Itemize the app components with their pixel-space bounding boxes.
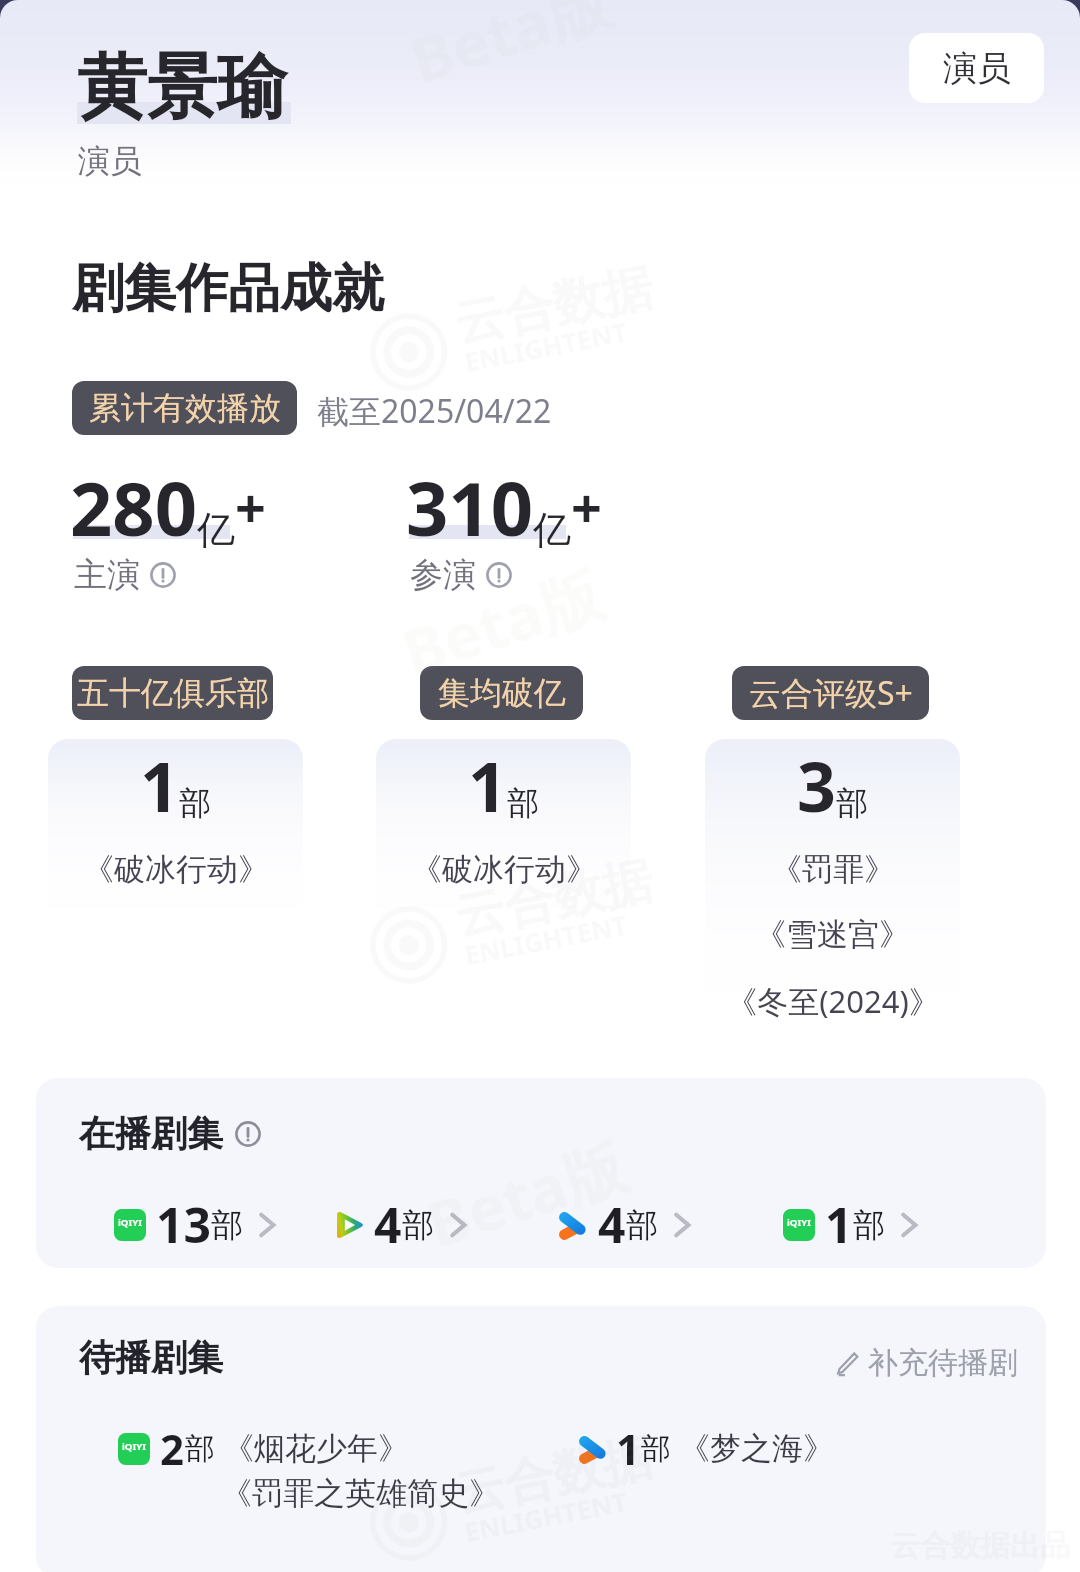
staticText: 部 [836, 783, 868, 823]
staticText: 云合评级S+ [749, 671, 913, 715]
staticText: 黄景瑜 [77, 44, 287, 132]
staticText: 部 [641, 1430, 671, 1468]
staticText: + [571, 470, 602, 544]
staticText: 云合数据 [449, 849, 658, 949]
staticText: iQIYI [118, 1216, 142, 1229]
staticText: 13 [156, 1192, 211, 1257]
staticText: Beta版 [392, 550, 613, 695]
staticText: 亿 [533, 506, 571, 554]
staticText: 演员 [78, 141, 142, 181]
staticText: 4 [374, 1192, 402, 1257]
button[interactable]: 1 [48, 739, 303, 939]
staticText: 《烟花少年》 [223, 1429, 409, 1468]
staticText: 《雪迷宫》 [755, 915, 910, 954]
staticText: 云合数据出品 [890, 1527, 1070, 1565]
staticText: 部 [402, 1205, 434, 1245]
staticText: 亿 [197, 506, 235, 554]
staticText: 演员 [943, 47, 1011, 90]
staticText: iQIYI [787, 1216, 811, 1229]
staticText: + [235, 470, 266, 544]
button[interactable]: 关于在播剧集 [235, 1121, 261, 1147]
staticText: 云合数据 [449, 1426, 658, 1526]
staticText: 待播剧集 [79, 1335, 223, 1380]
button[interactable]: 补充待播剧 [834, 1344, 1018, 1382]
staticText: 在播剧集 [79, 1111, 223, 1156]
button[interactable]: 4 [332, 1192, 474, 1257]
staticText: 《冬至(2024)》 [726, 980, 940, 1022]
staticText: 剧集作品成就 [72, 256, 384, 322]
staticText: 集均破亿 [438, 673, 566, 713]
button[interactable]: 4 [556, 1192, 698, 1257]
staticText: 《罚罪》 [771, 850, 895, 889]
button[interactable]: 关于参演 有效播放量 [486, 562, 512, 588]
staticText: 4 [598, 1192, 626, 1257]
staticText: 部 [179, 783, 211, 823]
staticText: 五十亿俱乐部 [77, 673, 269, 713]
staticText: 《破冰行动》 [411, 850, 597, 889]
staticText: 部 [507, 783, 539, 823]
button[interactable]: 关于主演 有效播放量 [150, 562, 176, 588]
staticText: 累计有效播放 [89, 388, 281, 428]
button[interactable]: 演员 [909, 33, 1044, 103]
staticText: 《罚罪之英雄简史》 [221, 1474, 500, 1513]
button[interactable]: iQIYI [118, 1420, 409, 1477]
staticText: 2 [160, 1420, 185, 1477]
button[interactable]: 1 [576, 1420, 834, 1477]
staticText: 280 [70, 457, 197, 558]
staticText: 部 [185, 1430, 215, 1468]
staticText: 1 [616, 1420, 641, 1477]
staticText: 《破冰行动》 [83, 850, 269, 889]
staticText: 310 [406, 457, 533, 558]
staticText: 部 [626, 1205, 658, 1245]
staticText: Beta版 [400, 0, 621, 103]
staticText: 补充待播剧 [868, 1344, 1018, 1382]
staticText: 主演 [74, 554, 140, 596]
staticText: 《梦之海》 [679, 1429, 834, 1468]
button[interactable]: iQIYI [114, 1192, 283, 1257]
button[interactable]: 3 [705, 739, 960, 1034]
staticText: 3 [797, 739, 836, 832]
staticText: 1 [825, 1192, 853, 1257]
staticText: Beta版 [416, 1122, 637, 1267]
staticText: 1 [140, 739, 179, 832]
staticText: 部 [211, 1205, 243, 1245]
button[interactable]: iQIYI [783, 1192, 925, 1257]
staticText: 部 [853, 1205, 885, 1245]
staticText: 1 [468, 739, 507, 832]
staticText: 参演 [410, 554, 476, 596]
staticText: 截至2025/04/22 [317, 389, 552, 433]
staticText: ENLIGHTENT [461, 1483, 630, 1549]
staticText: iQIYI [122, 1440, 146, 1453]
button[interactable]: 1 [376, 739, 631, 939]
